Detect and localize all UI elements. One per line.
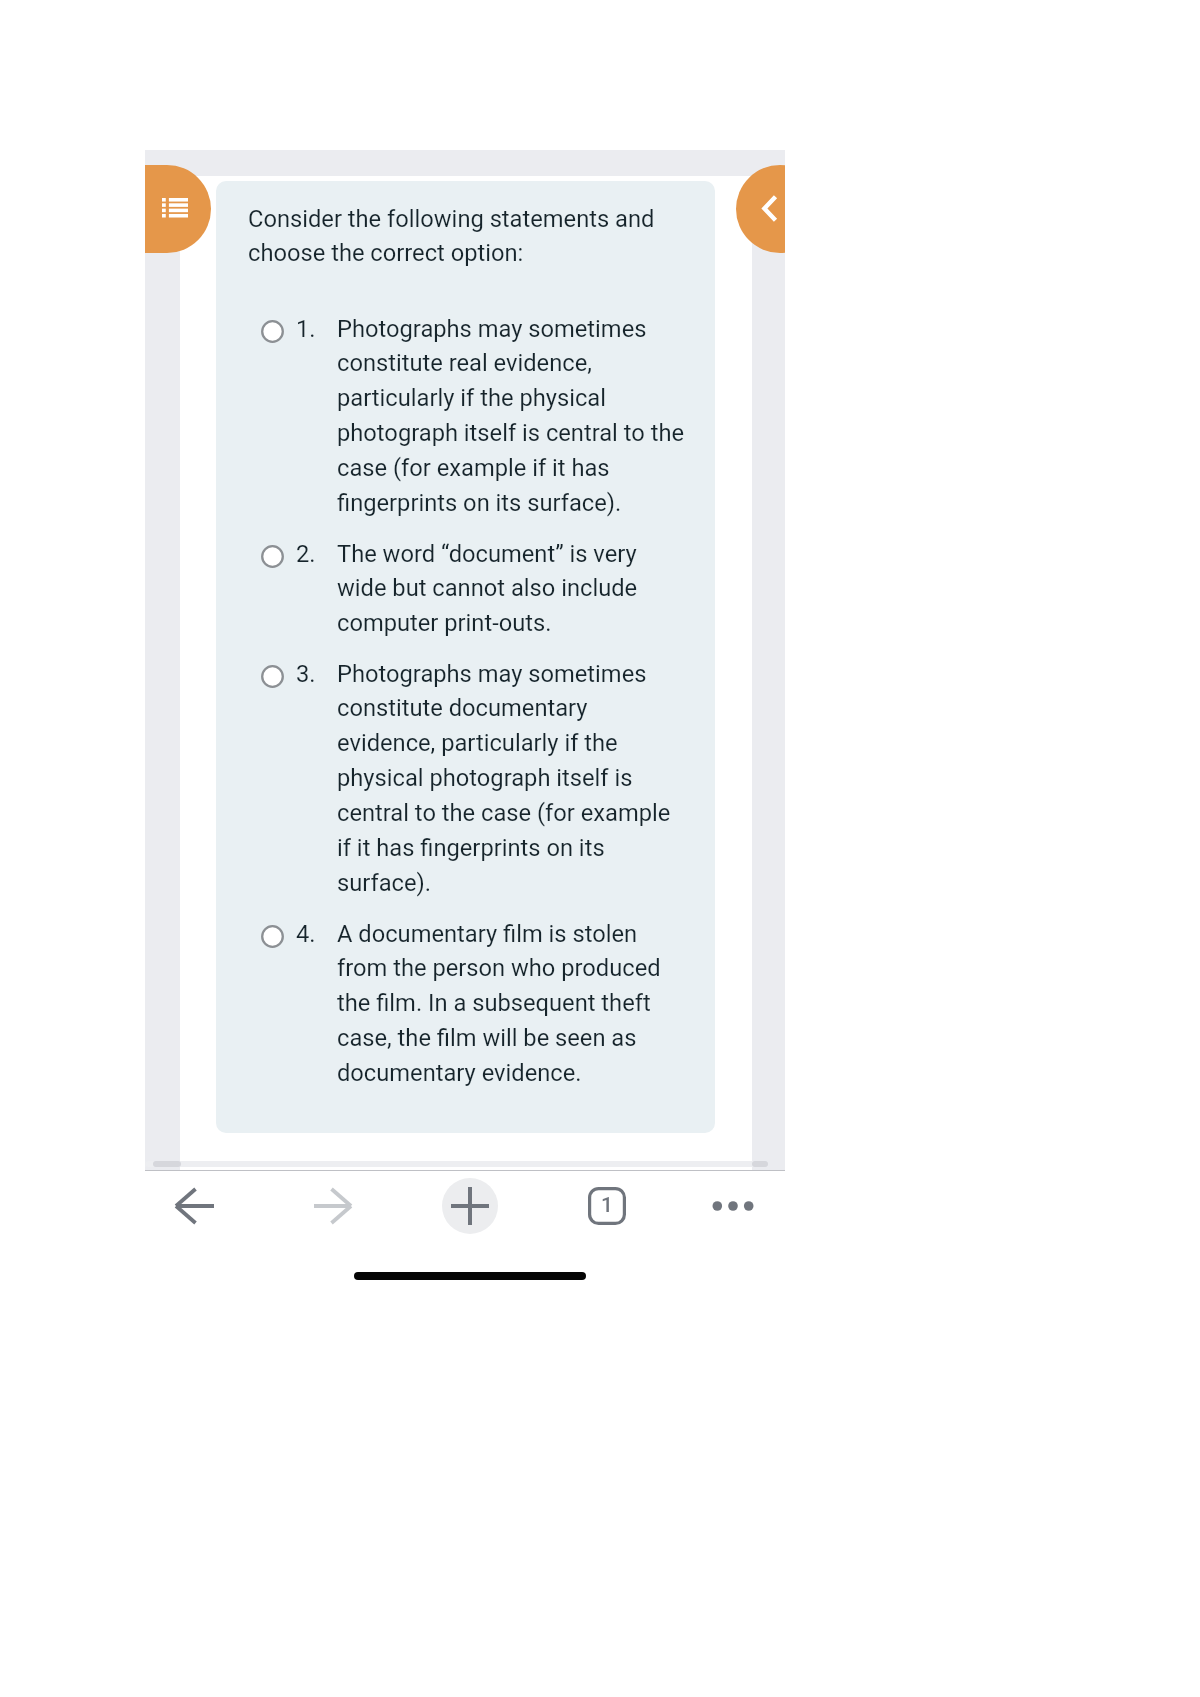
button[interactable]: 1. (216, 315, 715, 517)
button[interactable]: Previous page (736, 165, 785, 253)
button[interactable]: Table of contents (145, 165, 211, 253)
staticText: 4. (296, 920, 316, 948)
staticText: 2. (296, 540, 316, 568)
staticText: Photographs may sometimes constitute rea… (337, 315, 685, 517)
button[interactable]: New tab (435, 1171, 505, 1241)
staticText: Consider the following statements and ch… (248, 205, 658, 267)
staticText: The word “document” is very wide but can… (337, 540, 685, 637)
button[interactable]: 4. (216, 920, 715, 1087)
button[interactable]: Back (160, 1171, 230, 1241)
button[interactable]: Tabs (572, 1171, 642, 1241)
button[interactable]: 3. (216, 660, 715, 897)
button[interactable]: Forward (297, 1171, 367, 1241)
staticText: 1. (296, 315, 316, 343)
button[interactable]: 2. (216, 540, 715, 637)
staticText: 3. (296, 660, 316, 688)
staticText: 1 (601, 1193, 613, 1218)
staticText: A documentary film is stolen from the pe… (337, 920, 685, 1087)
staticText: Photographs may sometimes constitute doc… (337, 660, 685, 897)
button[interactable]: More options (698, 1171, 768, 1241)
